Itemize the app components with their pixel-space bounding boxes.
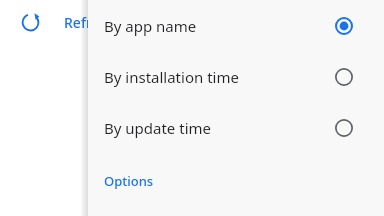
staticText: Options bbox=[104, 172, 154, 190]
button[interactable]: Refresh bbox=[14, 6, 46, 38]
button[interactable]: Options bbox=[88, 164, 384, 198]
staticText: By installation time bbox=[104, 67, 332, 87]
staticText: Refresh list bbox=[64, 13, 139, 32]
button[interactable]: By installation time bbox=[88, 51, 384, 102]
staticText: By update time bbox=[104, 118, 332, 138]
button[interactable]: By update time bbox=[88, 102, 384, 153]
button[interactable]: Refresh list bbox=[64, 13, 139, 32]
staticText: By app name bbox=[104, 16, 332, 36]
button[interactable]: By app name bbox=[88, 0, 384, 51]
